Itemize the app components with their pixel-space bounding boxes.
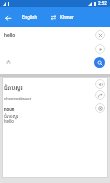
staticText: ជំរាបសួរ — [4, 113, 19, 119]
staticText: Khmer — [60, 15, 74, 20]
button[interactable]: Clear — [95, 30, 105, 40]
staticText: hello — [4, 32, 16, 38]
staticText: English — [22, 15, 38, 20]
staticText: ជំរាបសួរ — [4, 84, 23, 92]
staticText: chomreabsuor — [4, 96, 32, 101]
staticText: hello — [4, 119, 14, 124]
button[interactable]: Khmer — [55, 7, 78, 27]
button[interactable]: Swap languages — [45, 7, 61, 27]
staticText: 2:52 — [98, 1, 107, 6]
button[interactable]: Search — [94, 57, 105, 68]
button[interactable]: Listen — [95, 79, 105, 89]
button[interactable]: English — [18, 7, 42, 27]
button[interactable]: Share — [95, 90, 105, 100]
button[interactable]: Back — [0, 10, 15, 25]
button[interactable]: Play — [95, 44, 105, 54]
staticText: noun — [4, 107, 15, 112]
button[interactable]: More options — [95, 103, 105, 113]
button[interactable]: hello — [0, 27, 110, 74]
